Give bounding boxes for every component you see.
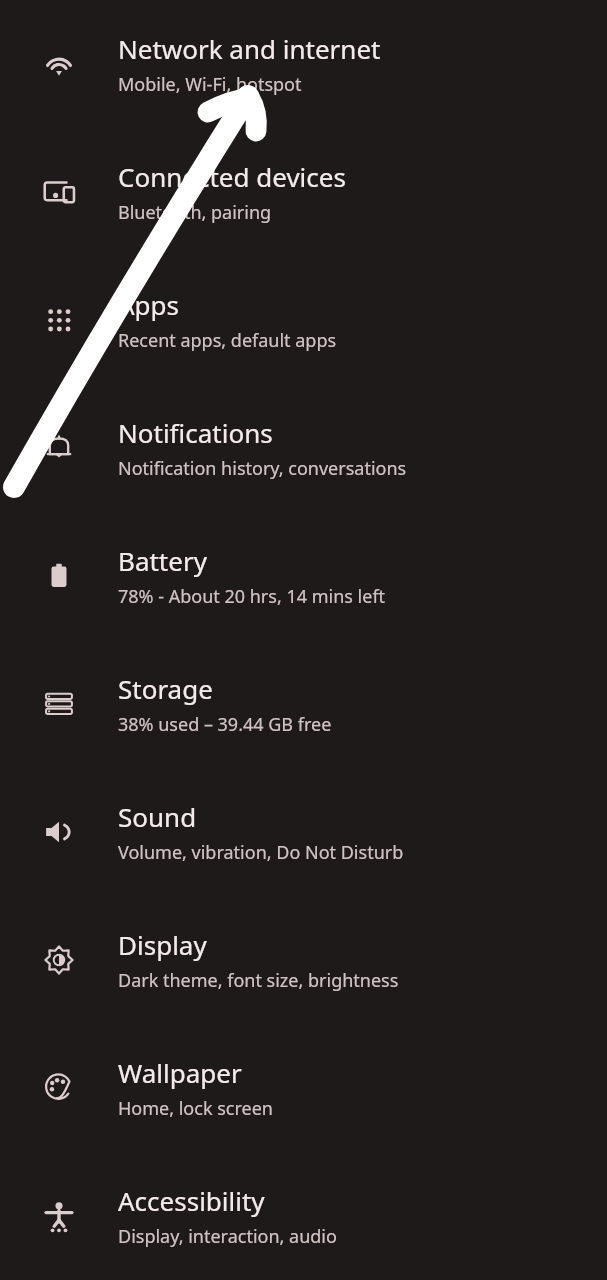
staticText: Notification history, conversations — [118, 456, 407, 481]
staticText: Notifications — [118, 415, 273, 450]
button[interactable]: Storage — [0, 640, 607, 768]
button[interactable]: Sound — [0, 768, 607, 896]
button[interactable]: Wallpaper — [0, 1024, 607, 1152]
button[interactable]: Display — [0, 896, 607, 1024]
staticText: Bluetooth, pairing — [118, 200, 272, 225]
staticText: Home, lock screen — [118, 1096, 273, 1121]
staticText: Mobile, Wi-Fi, hotspot — [118, 72, 302, 97]
staticText: Accessibility — [118, 1183, 265, 1218]
staticText: 78% - About 20 hrs, 14 mins left — [118, 584, 386, 609]
staticText: Connected devices — [118, 159, 346, 194]
button[interactable]: Network and internet — [0, 0, 607, 128]
button[interactable]: Notifications — [0, 384, 607, 512]
button[interactable]: Accessibility — [0, 1152, 607, 1280]
staticText: Apps — [118, 287, 180, 322]
staticText: Dark theme, font size, brightness — [118, 968, 399, 993]
staticText: Wallpaper — [118, 1055, 242, 1090]
staticText: Sound — [118, 799, 197, 834]
staticText: Display — [118, 927, 207, 962]
staticText: Display, interaction, audio — [118, 1224, 337, 1249]
staticText: Volume, vibration, Do Not Disturb — [118, 840, 404, 865]
staticText: Recent apps, default apps — [118, 328, 337, 353]
staticText: Storage — [118, 671, 213, 706]
staticText: 38% used – 39.44 GB free — [118, 712, 332, 737]
staticText: Network and internet — [118, 31, 381, 66]
button[interactable]: Connected devices — [0, 128, 607, 256]
button[interactable]: Battery — [0, 512, 607, 640]
button[interactable]: Apps — [0, 256, 607, 384]
staticText: Battery — [118, 543, 207, 578]
